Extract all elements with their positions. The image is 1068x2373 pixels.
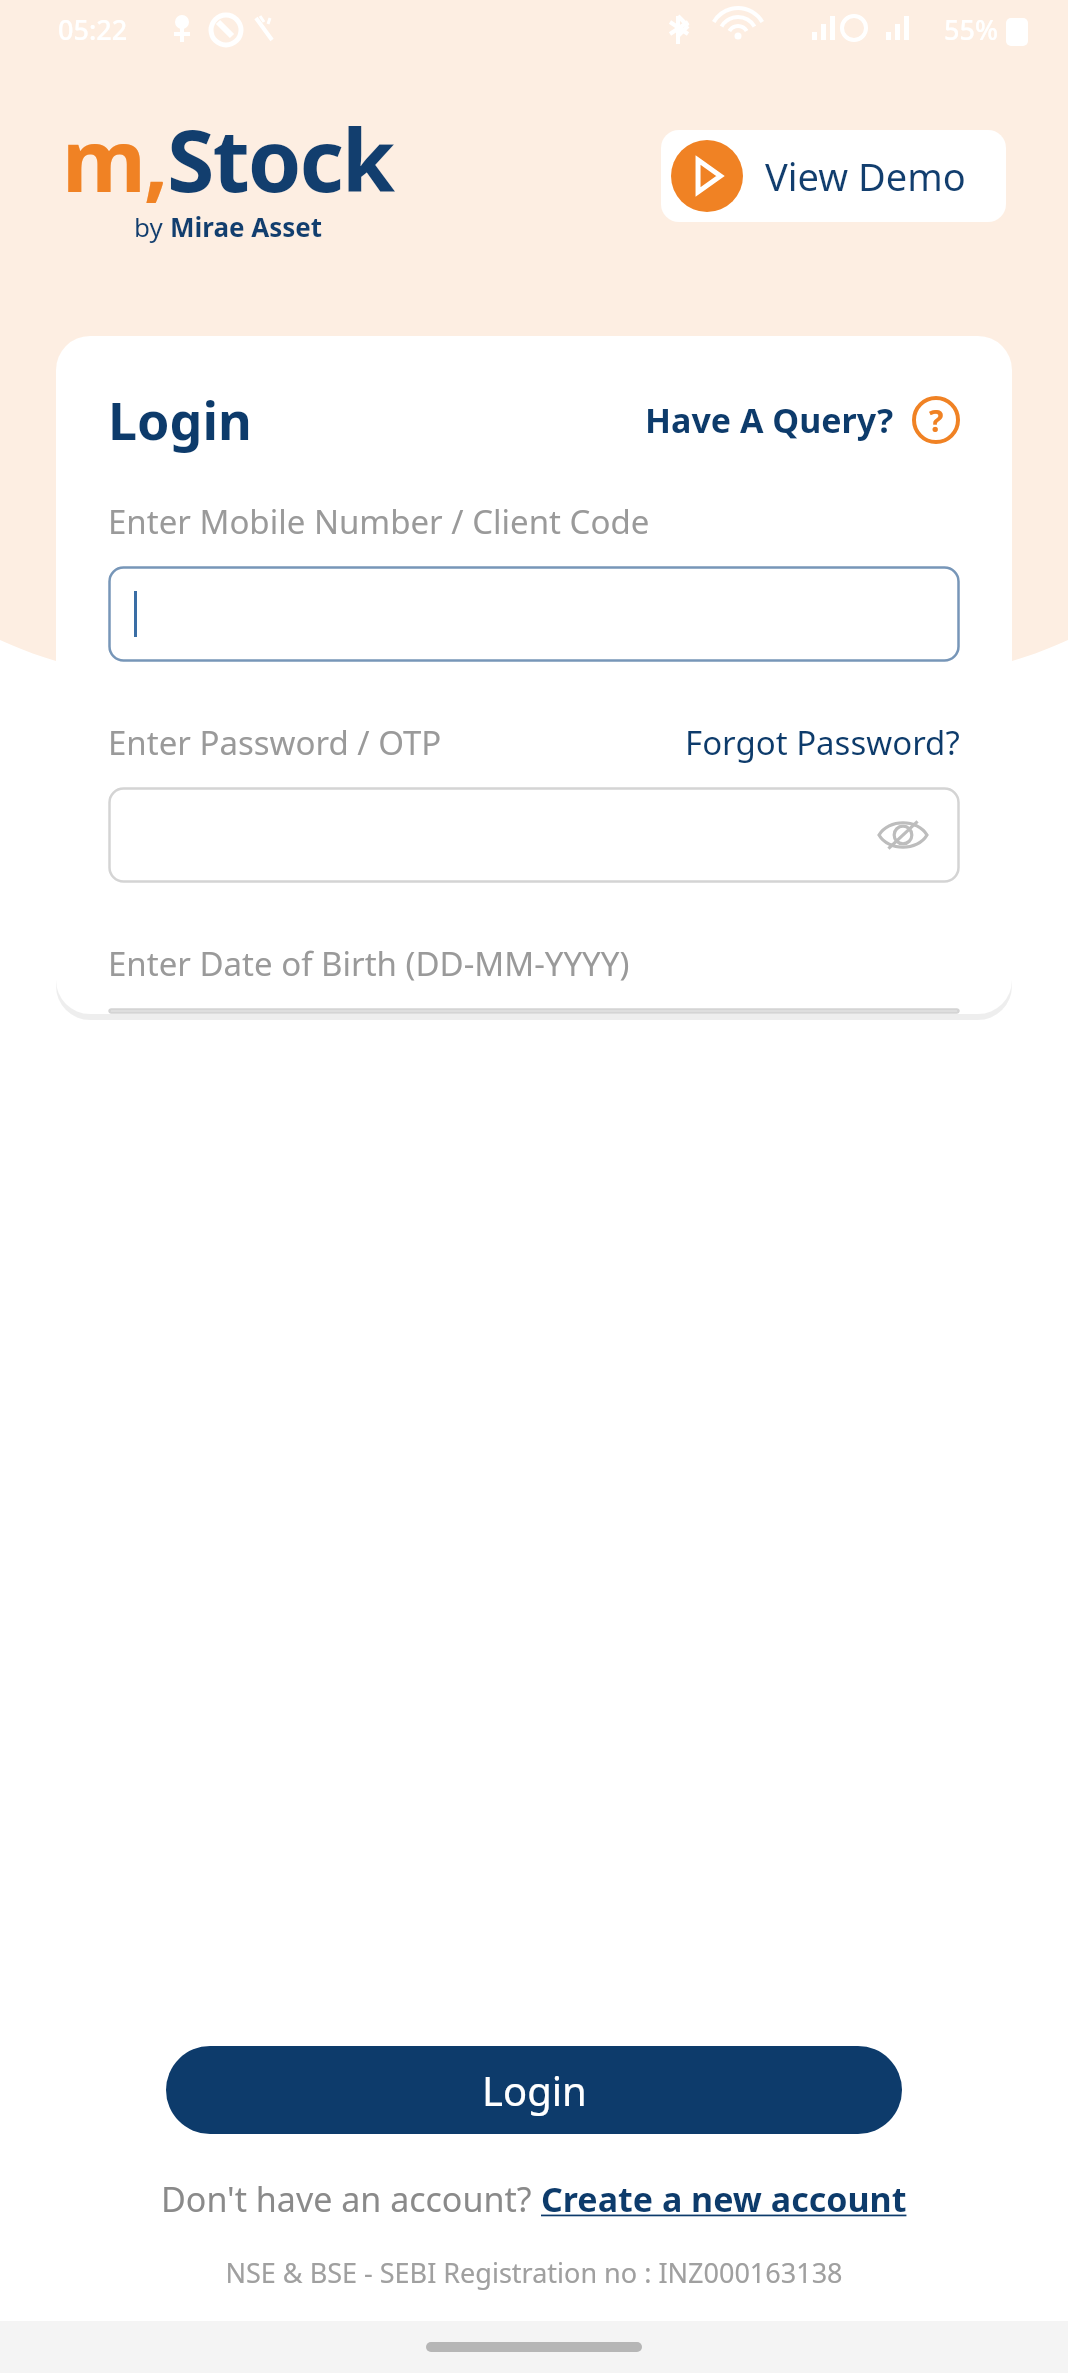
button[interactable]: Create a new account <box>541 2176 907 2222</box>
staticText: m, <box>62 100 167 217</box>
staticText: by <box>134 209 170 244</box>
staticText: 05:22 <box>58 11 128 48</box>
button[interactable]: Have A Query? <box>645 396 960 444</box>
staticText: Login <box>108 384 252 455</box>
staticText: 55% <box>944 11 998 48</box>
staticText: Don't have an account? <box>161 2176 541 2222</box>
button[interactable]: Forgot Password? <box>685 720 960 765</box>
button[interactable] <box>108 1008 960 1014</box>
staticText: Have A Query? <box>645 397 894 443</box>
staticText: Enter Password / OTP <box>108 720 442 765</box>
staticText: Login <box>482 2063 587 2117</box>
button[interactable]: Show password <box>874 806 932 864</box>
staticText: Stock <box>167 100 394 217</box>
button[interactable]: View Demo <box>661 130 1006 222</box>
staticText: Mirae Asset <box>170 209 323 244</box>
button[interactable]: Login <box>166 2046 902 2134</box>
button[interactable]: Show password <box>108 787 960 883</box>
staticText: Enter Mobile Number / Client Code <box>108 499 650 544</box>
staticText: View Demo <box>765 150 966 202</box>
staticText: Enter Date of Birth (DD-MM-YYYY) <box>108 941 630 986</box>
button[interactable] <box>108 566 960 662</box>
staticText: ? <box>929 400 944 441</box>
staticText: NSE & BSE - SEBI Registration no : INZ00… <box>225 2254 843 2291</box>
